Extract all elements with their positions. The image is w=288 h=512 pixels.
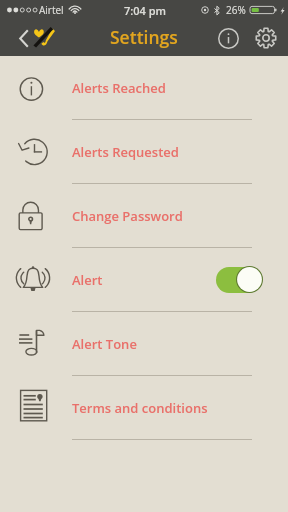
button[interactable]: Back (14, 24, 34, 52)
staticText: Airtel (39, 3, 64, 17)
staticText: Change Password (72, 207, 183, 225)
staticText: Alert (72, 271, 103, 289)
staticText: Settings (110, 25, 178, 49)
button[interactable]: Terms and conditions (0, 376, 288, 440)
staticText: Alerts Requested (72, 143, 179, 161)
staticText: Alert Tone (72, 335, 137, 353)
button[interactable]: Settings (251, 23, 281, 53)
button[interactable]: Change Password (0, 184, 288, 248)
staticText: 7:04 pm (124, 3, 167, 18)
staticText: 26% (226, 3, 246, 17)
button[interactable]: Alerts Reached (0, 56, 288, 120)
button[interactable]: Alert (0, 248, 288, 312)
staticText: Alerts Reached (72, 79, 166, 97)
button[interactable]: Info (213, 23, 243, 53)
staticText: Terms and conditions (72, 399, 208, 417)
button[interactable]: Alerts Requested (0, 120, 288, 184)
button[interactable]: Alert Tone (0, 312, 288, 376)
button[interactable]: Alert toggle (216, 266, 263, 293)
button[interactable]: Home (32, 26, 56, 50)
